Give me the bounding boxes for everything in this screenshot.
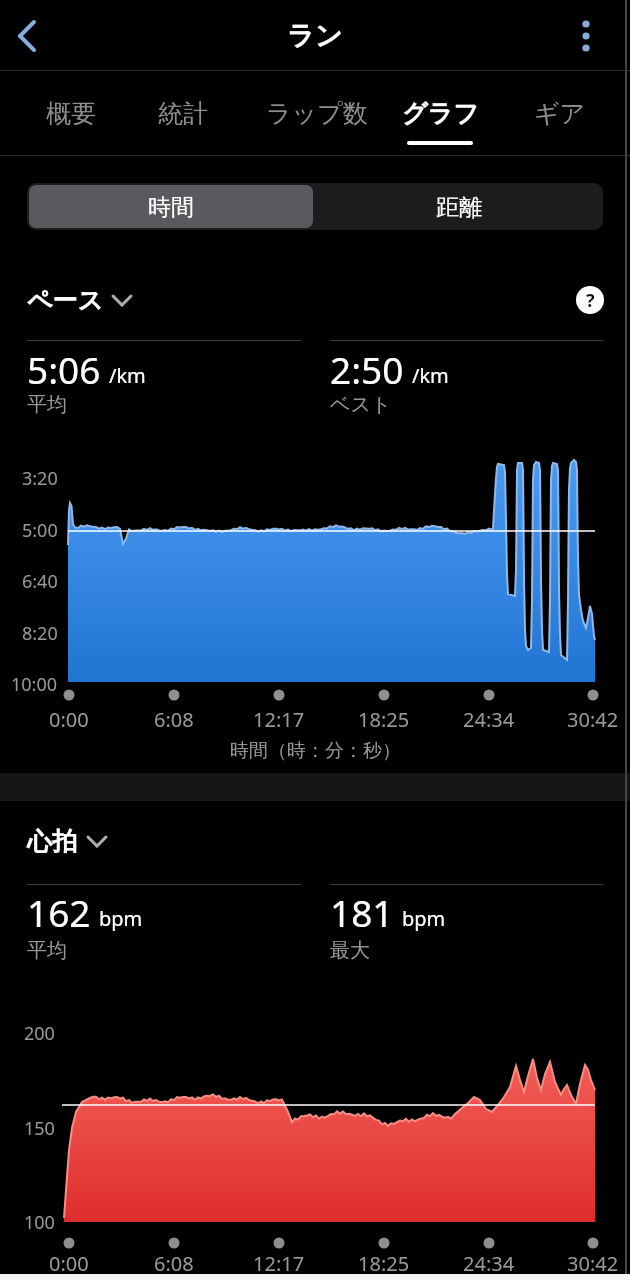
staticText: 150 — [24, 1116, 55, 1140]
staticText: /km — [109, 362, 146, 389]
staticText: 6:40 — [22, 569, 58, 593]
staticText: ラン — [287, 19, 343, 53]
button[interactable]: ラップ数 — [257, 96, 377, 130]
staticText: 6:08 — [154, 706, 194, 732]
button[interactable] — [564, 14, 608, 58]
staticText: 10:00 — [11, 672, 58, 696]
staticText: 18:25 — [358, 1250, 410, 1276]
staticText: 時間（時：分：秒） — [230, 739, 401, 763]
staticText: 181 — [330, 887, 394, 937]
staticText: 0:00 — [49, 706, 89, 732]
staticText: 距離 — [436, 193, 482, 222]
staticText: 平均 — [27, 938, 67, 962]
staticText: 統計 — [158, 98, 208, 129]
button[interactable]: ギア — [500, 96, 620, 130]
staticText: 8:20 — [22, 621, 58, 645]
button[interactable]: ペース — [27, 284, 137, 316]
staticText: ? — [586, 288, 595, 313]
staticText: bpm — [99, 905, 143, 932]
staticText: 0:00 — [49, 1250, 89, 1276]
staticText: グラフ — [402, 98, 479, 129]
staticText: 18:25 — [358, 706, 410, 732]
staticText: 12:17 — [253, 706, 305, 732]
staticText: 5:00 — [22, 518, 58, 542]
button[interactable]: 概要 — [11, 96, 131, 130]
staticText: ギア — [534, 98, 586, 129]
button[interactable]: ? — [576, 286, 604, 314]
button[interactable]: グラフ — [380, 96, 500, 130]
staticText: 162 — [27, 887, 91, 937]
button[interactable] — [29, 185, 313, 228]
staticText: ラップ数 — [266, 98, 368, 129]
button[interactable] — [8, 16, 52, 60]
staticText: 100 — [24, 1210, 55, 1234]
staticText: ペース — [27, 285, 104, 316]
staticText: 時間 — [148, 193, 194, 222]
staticText: 24:34 — [463, 1250, 515, 1276]
staticText: 平均 — [27, 392, 67, 416]
staticText: 5:06 — [27, 344, 101, 394]
staticText: ベスト — [330, 392, 392, 416]
staticText: 心拍 — [27, 826, 77, 857]
button[interactable]: 統計 — [123, 96, 243, 130]
button[interactable] — [315, 185, 601, 228]
staticText: 200 — [24, 1021, 55, 1045]
staticText: 最大 — [330, 938, 370, 962]
staticText: 30:42 — [567, 1250, 619, 1276]
staticText: 3:20 — [22, 466, 58, 490]
staticText: bpm — [402, 905, 446, 932]
staticText: 6:08 — [154, 1250, 194, 1276]
button[interactable]: 心拍 — [27, 825, 107, 857]
staticText: 12:17 — [253, 1250, 305, 1276]
staticText: 概要 — [46, 98, 96, 129]
staticText: 30:42 — [567, 706, 619, 732]
staticText: /km — [412, 362, 449, 389]
staticText: 2:50 — [330, 344, 404, 394]
staticText: 24:34 — [463, 706, 515, 732]
